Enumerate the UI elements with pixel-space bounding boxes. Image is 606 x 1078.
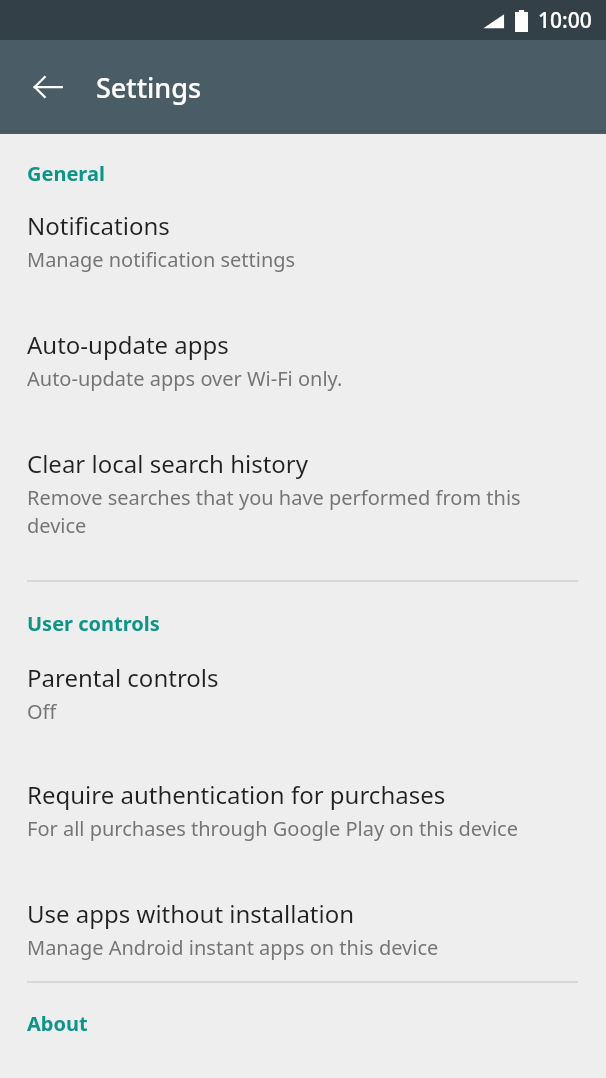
staticText: For all purchases through Google Play on…: [27, 815, 518, 842]
button[interactable]: Back: [22, 61, 74, 113]
button[interactable]: Require authentication for purchases: [0, 778, 606, 842]
staticText: About: [27, 1010, 88, 1037]
button[interactable]: Auto-update apps: [0, 328, 606, 392]
staticText: Off: [27, 698, 57, 725]
button[interactable]: General: [0, 160, 606, 187]
staticText: Auto-update apps over Wi-Fi only.: [27, 365, 343, 392]
staticText: Notifications: [27, 209, 170, 242]
staticText: General: [27, 160, 105, 187]
staticText: Manage Android instant apps on this devi…: [27, 934, 439, 961]
staticText: 10:00: [538, 6, 592, 35]
button[interactable]: About: [0, 1010, 606, 1037]
button[interactable]: Parental controls: [0, 661, 606, 725]
staticText: Require authentication for purchases: [27, 778, 446, 811]
staticText: Settings: [96, 69, 202, 106]
staticText: Use apps without installation: [27, 897, 355, 930]
button[interactable]: Notifications: [0, 209, 606, 273]
staticText: Parental controls: [27, 661, 219, 694]
staticText: Remove searches that you have performed …: [27, 484, 579, 539]
button[interactable]: User controls: [0, 610, 606, 637]
staticText: Auto-update apps: [27, 328, 229, 361]
staticText: Clear local search history: [27, 447, 309, 480]
staticText: Manage notification settings: [27, 246, 296, 273]
staticText: User controls: [27, 610, 160, 637]
button[interactable]: Clear local search history: [0, 447, 606, 539]
button[interactable]: Use apps without installation: [0, 897, 606, 961]
